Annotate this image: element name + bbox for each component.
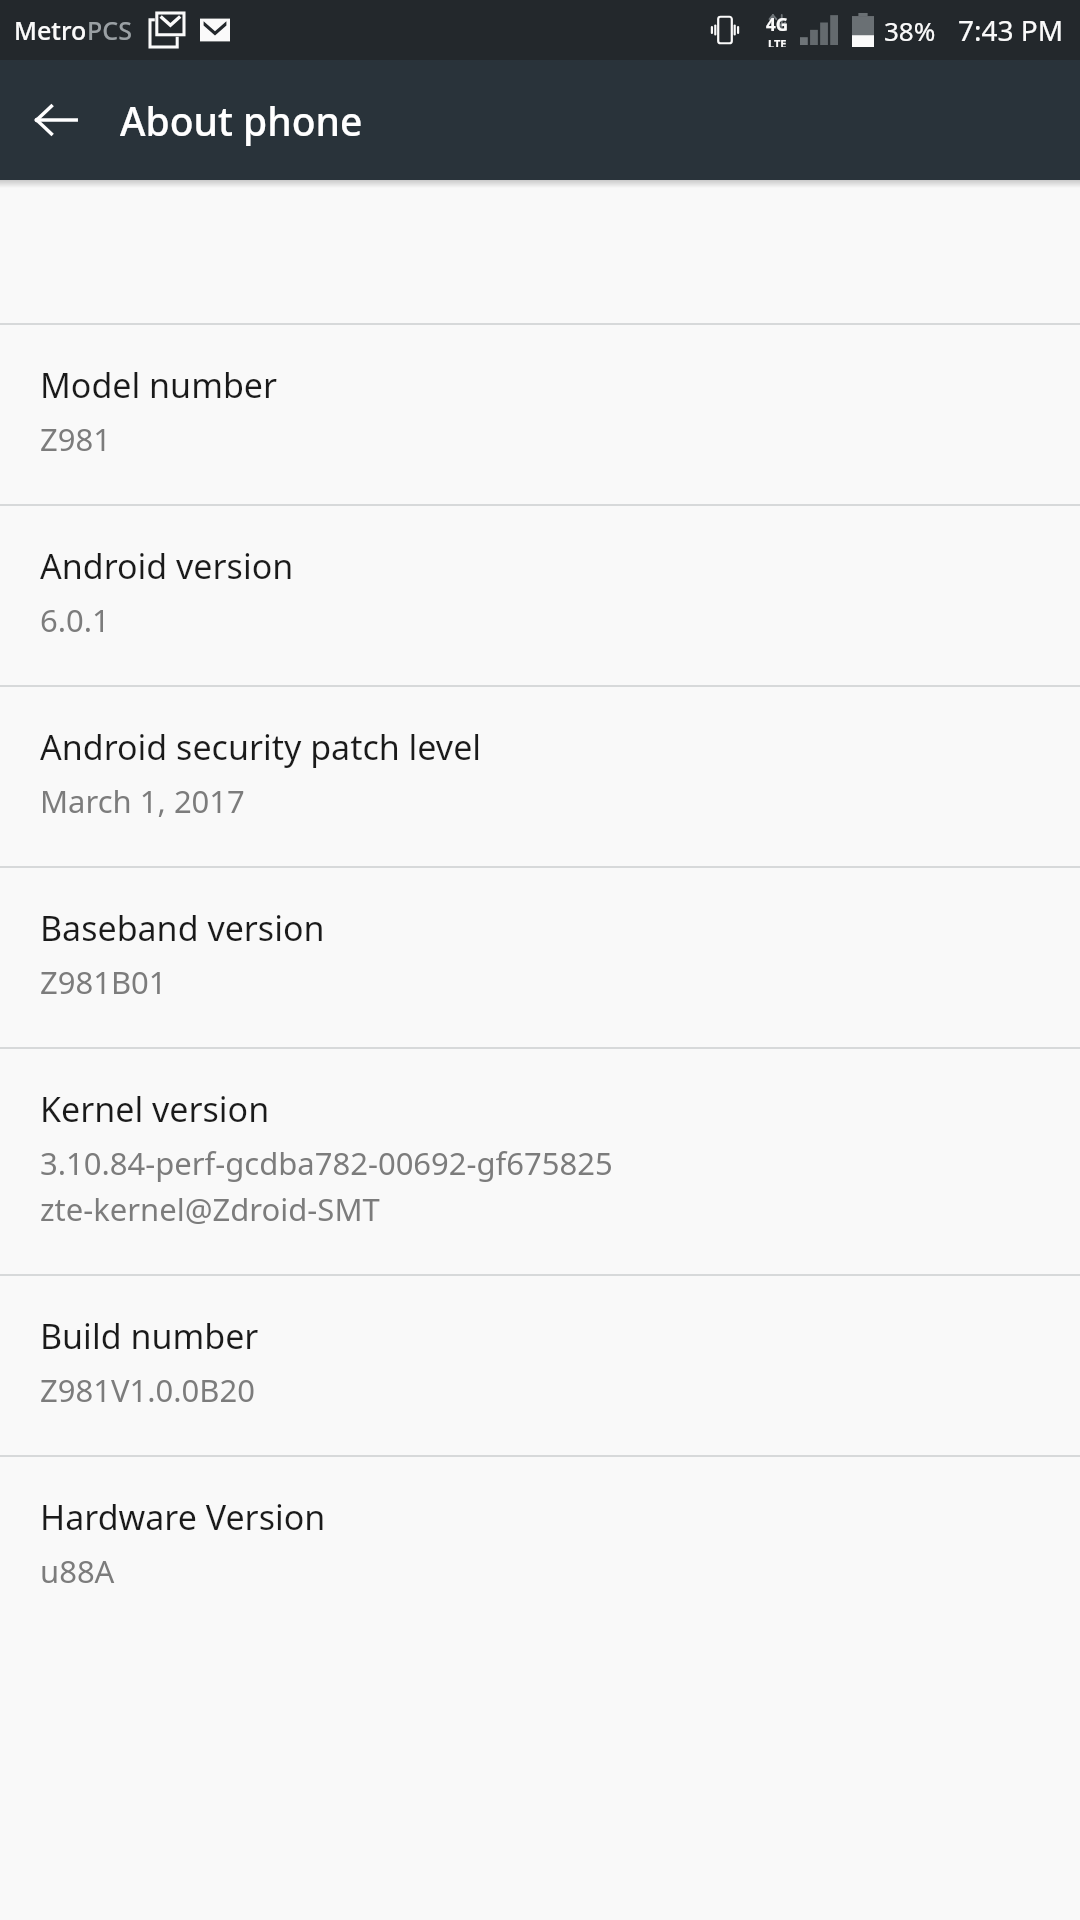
staticText: Metro	[14, 13, 87, 47]
staticText: PCS	[87, 13, 132, 47]
staticText: zte-kernel@Zdroid-SMT	[40, 1188, 380, 1230]
staticText: Z981	[40, 418, 111, 460]
staticText: 7:43 PM	[958, 11, 1064, 49]
staticText: Z981B01	[40, 961, 167, 1003]
staticText: 3.10.84-perf-gcdba782-00692-gf675825	[40, 1142, 613, 1184]
staticText: Model number	[40, 362, 278, 408]
staticText: Kernel version	[40, 1086, 270, 1132]
button[interactable]: Kernel version	[0, 1049, 1080, 1274]
staticText: Build number	[40, 1313, 259, 1359]
button[interactable]: Android version	[0, 506, 1080, 685]
button[interactable]: Back	[20, 84, 92, 156]
staticText: Z981V1.0.0B20	[40, 1369, 255, 1411]
button[interactable]: Legal information	[0, 180, 1080, 323]
button[interactable]: Build number	[0, 1276, 1080, 1455]
staticText: About phone	[120, 94, 363, 147]
staticText: Baseband version	[40, 905, 325, 951]
staticText: Android security patch level	[40, 724, 482, 770]
other: Back	[33, 97, 79, 143]
staticText: March 1, 2017	[40, 780, 245, 822]
staticText: LTE	[768, 36, 787, 47]
staticText: 4G	[766, 13, 789, 36]
button[interactable]: Hardware Version	[0, 1457, 1080, 1636]
button[interactable]: Model number	[0, 325, 1080, 504]
button[interactable]: Baseband version	[0, 868, 1080, 1047]
staticText: Hardware Version	[40, 1494, 326, 1540]
button[interactable]: Android security patch level	[0, 687, 1080, 866]
staticText: 38%	[884, 13, 936, 48]
staticText: u88A	[40, 1550, 115, 1592]
staticText: Legal information	[40, 180, 325, 182]
staticText: 6.0.1	[40, 599, 110, 641]
staticText: Android version	[40, 543, 294, 589]
